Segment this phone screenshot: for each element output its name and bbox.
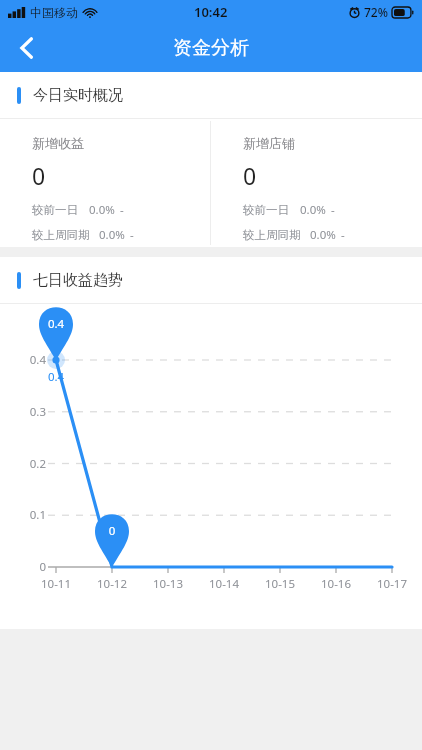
staticText: 0.1 <box>2 507 46 523</box>
staticText: 较上周同期 <box>32 228 90 242</box>
staticText: 较前一日 <box>32 203 78 217</box>
staticText: 0 <box>243 160 257 191</box>
staticText: 10-15 <box>254 576 306 592</box>
staticText: 0 <box>90 523 134 539</box>
button[interactable]: 新增收益 <box>0 119 210 247</box>
staticText: 10-11 <box>30 576 82 592</box>
staticText: 0.2 <box>2 456 46 472</box>
button[interactable]: 新增店铺 <box>211 119 422 247</box>
staticText: 0 <box>32 160 46 191</box>
staticText: 资金分析 <box>173 36 249 60</box>
staticText: 10-17 <box>366 576 418 592</box>
staticText: 10-16 <box>310 576 362 592</box>
staticText: 72% <box>364 4 388 20</box>
staticText: 0.0% <box>89 202 115 218</box>
button[interactable]: Back <box>0 24 52 72</box>
staticText: 0.0% <box>300 202 326 218</box>
staticText: 10-12 <box>86 576 138 592</box>
staticText: 0.0% <box>99 227 125 243</box>
staticText: 今日实时概况 <box>33 86 123 105</box>
staticText: 0 <box>2 559 46 575</box>
staticText: 0.4 <box>34 316 78 332</box>
staticText: 中国移动 <box>30 5 78 20</box>
staticText: 0.4 <box>2 352 46 368</box>
staticText: 0.3 <box>2 404 46 420</box>
staticText: 较前一日 <box>243 203 289 217</box>
staticText: 七日收益趋势 <box>33 271 123 290</box>
staticText: - <box>130 227 134 243</box>
staticText: 10-13 <box>142 576 194 592</box>
staticText: 0.0% <box>310 227 336 243</box>
staticText: 新增店铺 <box>243 135 295 151</box>
staticText: 较上周同期 <box>243 228 301 242</box>
staticText: - <box>341 227 345 243</box>
staticText: 新增收益 <box>32 135 84 151</box>
staticText: 10-14 <box>198 576 250 592</box>
staticText: - <box>331 202 335 218</box>
staticText: - <box>120 202 124 218</box>
staticText: 0.4 <box>34 369 78 385</box>
staticText: 10:42 <box>194 3 228 21</box>
